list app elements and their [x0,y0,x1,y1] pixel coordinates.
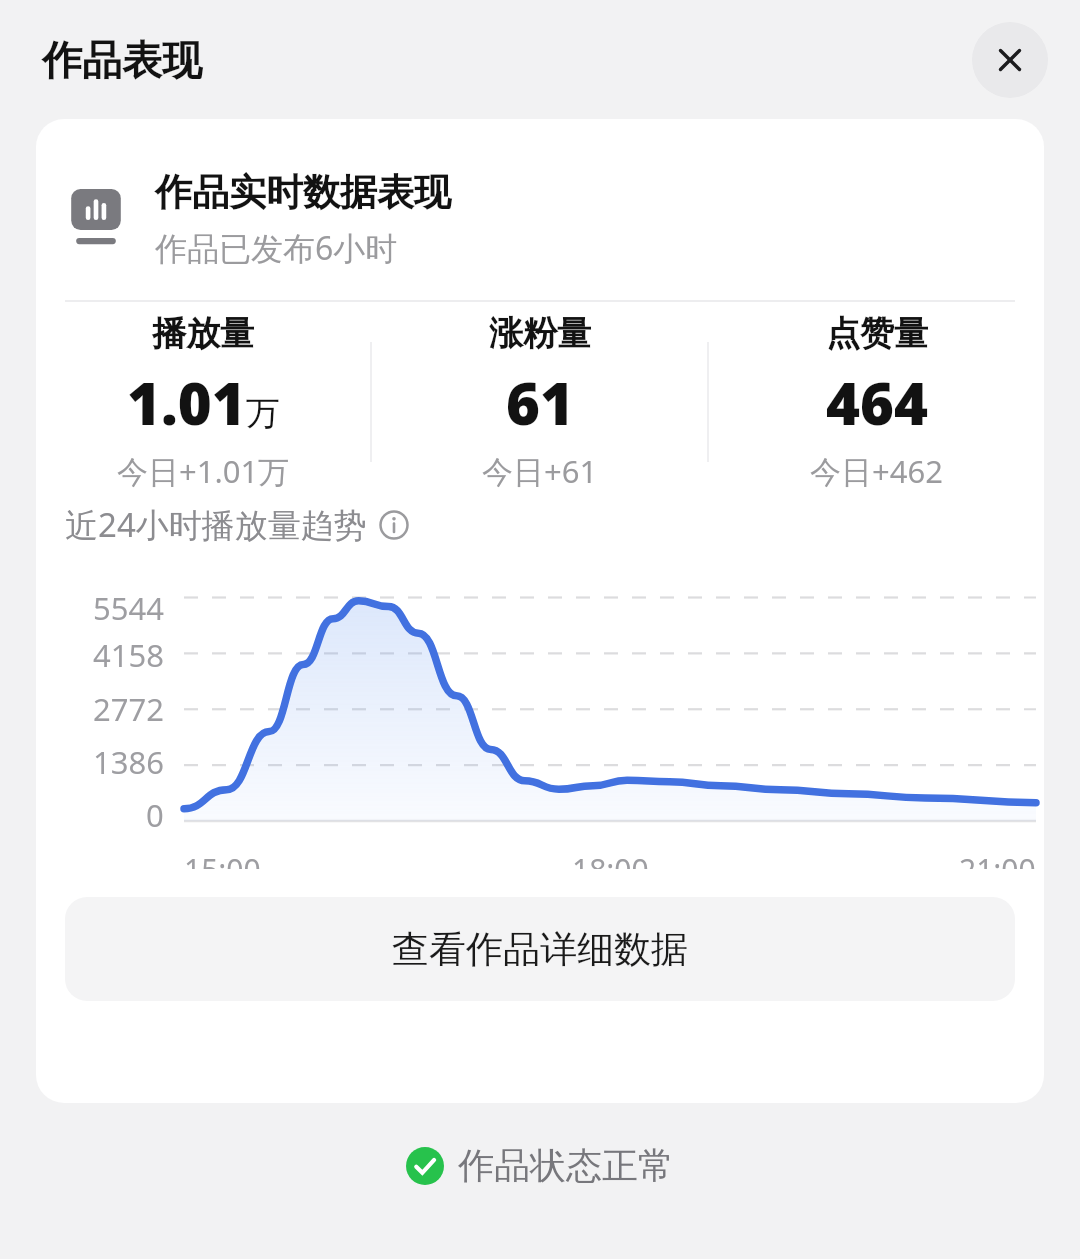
staticText: 0 [146,794,164,836]
staticText: 作品已发布6小时 [155,226,398,270]
button[interactable]: 查看作品详细数据 [65,897,1015,1001]
staticText: 1.01万 [127,363,280,442]
button[interactable]: 涨粉量 [372,302,707,502]
staticText: 4158 [93,634,164,676]
staticText: 今日+61 [482,450,598,492]
staticText: 2772 [93,688,164,730]
staticText: 点赞量 [826,312,928,355]
staticText: 5544 [93,587,164,629]
button[interactable]: 点赞量 [709,302,1044,502]
staticText: 18:00 [572,849,649,869]
staticText: 今日+1.01万 [117,450,290,492]
staticText: 作品表现 [42,35,202,85]
staticText: 464 [826,363,928,442]
staticText: 今日+462 [810,450,943,492]
button[interactable]: Close [972,22,1048,98]
staticText: 近24小时播放量趋势 [65,502,367,547]
staticText: 15:00 [184,849,261,869]
staticText: 21:00 [959,849,1036,869]
staticText: 播放量 [152,312,254,355]
staticText: 查看作品详细数据 [392,926,688,973]
staticText: 作品实时数据表现 [155,169,451,216]
staticText: 1386 [93,741,164,783]
staticText: 涨粉量 [489,312,591,355]
button[interactable]: 播放量 [36,302,370,502]
staticText: 作品状态正常 [458,1143,674,1188]
staticText: 61 [506,363,574,442]
